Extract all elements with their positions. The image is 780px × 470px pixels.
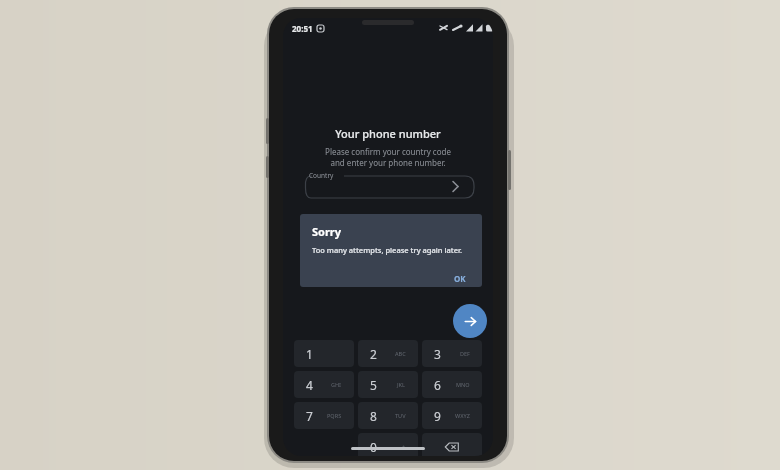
staticText: WXYZ [455, 412, 470, 419]
button[interactable]: 0 [358, 433, 418, 456]
button[interactable]: OK [448, 270, 472, 287]
button[interactable]: 4 [294, 371, 354, 398]
staticText: Your phone number [335, 126, 441, 141]
staticText: PQRS [327, 412, 342, 419]
staticText: 1 [306, 346, 313, 362]
staticText: GHI [331, 381, 342, 388]
staticText: DEF [460, 350, 470, 357]
staticText: 20:51 [292, 23, 313, 34]
staticText: 5 [370, 377, 377, 393]
button[interactable]: 3 [422, 340, 482, 367]
button[interactable]: 7 [294, 402, 354, 429]
staticText: 2 [370, 346, 377, 362]
staticText: OK [454, 273, 466, 284]
staticText: 7 [306, 408, 313, 424]
staticText: ABC [395, 350, 406, 357]
staticText: MNO [456, 381, 470, 388]
button[interactable]: 1 [294, 340, 354, 367]
button[interactable]: Country [300, 171, 476, 200]
button[interactable]: 5 [358, 371, 418, 398]
staticText: TUV [395, 412, 406, 419]
staticText: 0 [370, 439, 377, 455]
button[interactable]: 9 [422, 402, 482, 429]
button[interactable]: 8 [358, 402, 418, 429]
staticText: 9 [434, 408, 441, 424]
staticText: Please confirm your country code and ent… [325, 146, 451, 168]
staticText: Too many attempts, please try again late… [312, 245, 462, 255]
staticText: 8 [370, 408, 377, 424]
button[interactable]: Continue [453, 304, 487, 338]
staticText: + [402, 443, 406, 450]
staticText: 3 [434, 346, 441, 362]
button[interactable]: Backspace [422, 433, 482, 456]
staticText: JKL [397, 381, 406, 388]
staticText: 6 [434, 377, 441, 393]
button[interactable]: 6 [422, 371, 482, 398]
staticText: Sorry [312, 224, 342, 239]
button[interactable]: 2 [358, 340, 418, 367]
staticText: 4 [306, 377, 313, 393]
staticText: Country [309, 171, 334, 180]
